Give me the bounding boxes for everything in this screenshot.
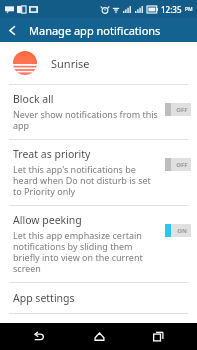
button[interactable]: Back: [0, 18, 24, 42]
button[interactable]: Toggle on: [165, 224, 191, 237]
button[interactable]: Home: [79, 323, 119, 350]
staticText: Allow peeking: [13, 213, 82, 227]
staticText: ON: [177, 227, 187, 235]
staticText: App settings: [13, 291, 75, 305]
button[interactable]: Sunrise: [0, 42, 197, 84]
button[interactable]: Recent apps: [138, 323, 178, 350]
button[interactable]: App settings: [0, 283, 197, 313]
staticText: PM: [185, 6, 193, 13]
button[interactable]: Treat as priority: [0, 140, 197, 205]
button[interactable]: Block all: [0, 85, 197, 139]
button[interactable]: Toggle off: [165, 158, 191, 171]
staticText: Treat as priority: [13, 147, 91, 161]
staticText: Let this app emphasize certain notificat…: [13, 229, 159, 274]
staticText: 12:35: [161, 4, 182, 15]
button[interactable]: Allow peeking: [0, 206, 197, 282]
staticText: Let this app's notifications be heard wh…: [13, 163, 159, 197]
staticText: OFF: [176, 106, 188, 114]
staticText: Sunrise: [51, 56, 90, 71]
button[interactable]: Toggle off: [165, 103, 191, 116]
staticText: OFF: [176, 161, 188, 169]
button[interactable]: Back: [19, 323, 59, 350]
staticText: Never show notifications from this app: [13, 108, 159, 131]
staticText: Manage app notifications: [29, 23, 161, 38]
staticText: Block all: [13, 92, 54, 106]
